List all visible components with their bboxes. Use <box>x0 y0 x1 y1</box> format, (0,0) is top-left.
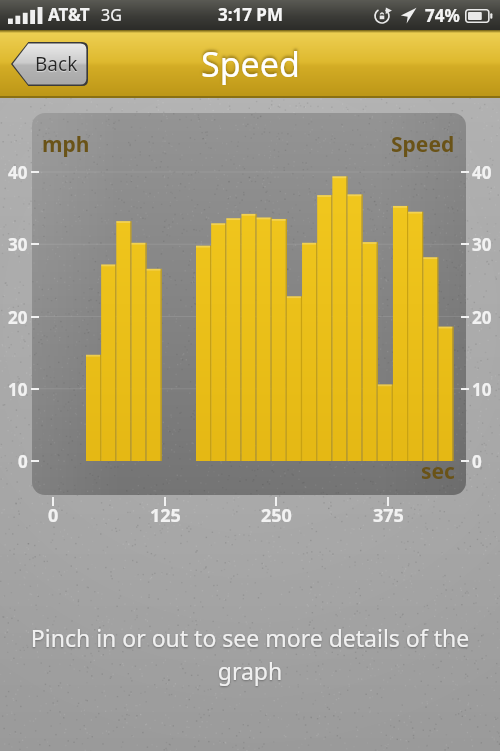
staticText: 125 <box>150 503 181 528</box>
staticText: Pinch in or out to see more details of t… <box>28 622 472 687</box>
button[interactable]: Back <box>10 42 88 86</box>
staticText: 20 <box>472 306 492 329</box>
staticText: 40 <box>8 161 28 184</box>
staticText: 375 <box>373 503 404 528</box>
staticText: 10 <box>472 378 492 401</box>
staticText: sec <box>421 457 455 486</box>
staticText: 0 <box>48 503 59 528</box>
staticText: 3:17 PM <box>218 3 283 26</box>
staticText: mph <box>42 130 90 159</box>
staticText: Back <box>35 51 78 77</box>
staticText: 30 <box>8 233 28 256</box>
staticText: 10 <box>8 378 28 401</box>
staticText: 20 <box>8 306 28 329</box>
staticText: 250 <box>261 503 292 528</box>
staticText: 3G <box>101 4 122 26</box>
staticText: 40 <box>472 161 492 184</box>
staticText: 30 <box>472 233 492 256</box>
staticText: 74% <box>425 4 460 27</box>
staticText: 0 <box>18 450 28 473</box>
staticText: 0 <box>472 450 482 473</box>
button[interactable]: mph <box>32 113 466 495</box>
staticText: AT&T <box>48 3 90 26</box>
staticText: Speed <box>391 130 455 159</box>
staticText: Speed <box>201 41 300 87</box>
